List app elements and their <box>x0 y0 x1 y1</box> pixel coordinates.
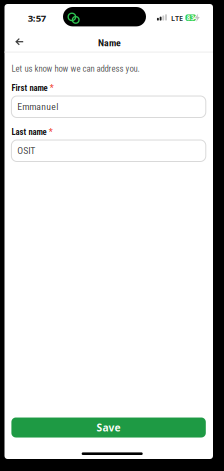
staticText: Save <box>97 420 121 434</box>
staticText: Last name <box>11 127 46 137</box>
staticText: * <box>49 127 53 137</box>
staticText: Emmanuel <box>17 101 58 112</box>
button[interactable]: Back <box>12 35 28 49</box>
staticText: * <box>50 83 54 93</box>
button[interactable]: OSIT <box>11 140 206 161</box>
button[interactable]: Save <box>11 417 206 437</box>
staticText: 83 <box>187 14 195 22</box>
staticText: 3:57 <box>28 11 46 25</box>
staticText: Name <box>98 37 121 49</box>
staticText: OSIT <box>17 145 35 156</box>
staticText: LTE <box>171 13 183 23</box>
staticText: First name <box>11 83 47 93</box>
button[interactable]: Emmanuel <box>11 96 206 117</box>
staticText: Let us know how we can address you. <box>11 63 139 74</box>
